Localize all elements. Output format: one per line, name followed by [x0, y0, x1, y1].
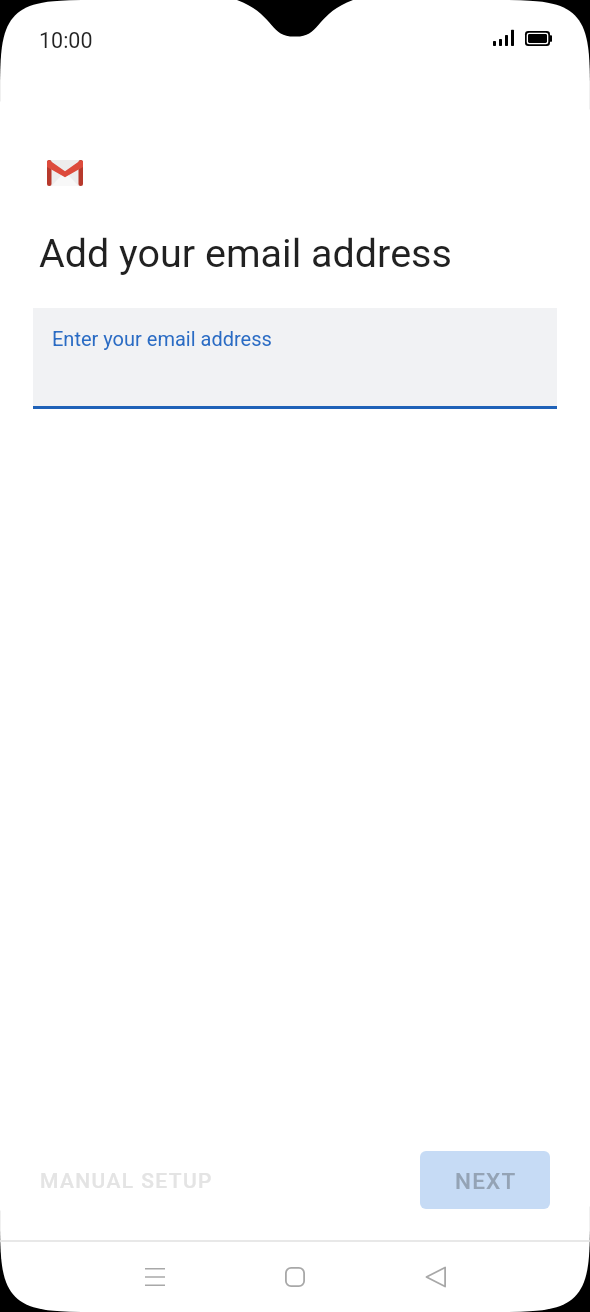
button[interactable]: Back — [387, 1241, 483, 1312]
staticText: Enter your email address — [52, 327, 272, 350]
button[interactable]: NEXT — [420, 1151, 550, 1209]
staticText: MANUAL SETUP — [40, 1169, 213, 1194]
button[interactable]: Recent apps — [107, 1241, 203, 1312]
button[interactable]: Enter your email address — [33, 308, 557, 409]
button[interactable]: MANUAL SETUP — [28, 1160, 225, 1203]
button[interactable]: Home — [247, 1241, 343, 1312]
staticText: 10:00 — [39, 28, 93, 53]
staticText: NEXT — [455, 1168, 517, 1194]
staticText: Add your email address — [39, 230, 452, 276]
